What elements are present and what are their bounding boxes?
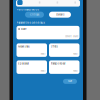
button[interactable]: Critique <box>25 12 44 18</box>
staticText: Standard <box>56 13 64 16</box>
staticText: SAVE <box>68 80 72 83</box>
staticText: ARRÊT <box>73 70 78 72</box>
button[interactable]: Date <box>16 26 79 39</box>
button[interactable]: Effets <box>49 43 79 57</box>
staticText: Convert Grand <box>65 35 78 38</box>
staticText: Critique <box>30 13 39 16</box>
staticText: ARRÊT <box>40 53 45 55</box>
staticText: ARRÊT <box>40 70 45 72</box>
button[interactable]: Transpondeur <box>49 60 79 74</box>
staticText: Date <box>21 27 26 31</box>
button[interactable]: App <box>17 0 23 5</box>
staticText: ARRÊT <box>73 53 78 55</box>
staticText: Effets <box>51 45 58 48</box>
button[interactable]: Standard <box>49 12 71 18</box>
button[interactable]: Neuve (hal) <box>16 43 47 57</box>
staticText: Neuve (hal) <box>18 45 30 48</box>
staticText: Paramètres Généraux <box>16 21 44 24</box>
button[interactable]: SAVE <box>63 79 77 84</box>
button[interactable]: Epaisseur <box>16 60 47 74</box>
staticText: Epaisseur <box>18 62 29 65</box>
staticText: Transpondeur <box>51 62 66 65</box>
staticText: Performance Mode <box>16 8 38 11</box>
